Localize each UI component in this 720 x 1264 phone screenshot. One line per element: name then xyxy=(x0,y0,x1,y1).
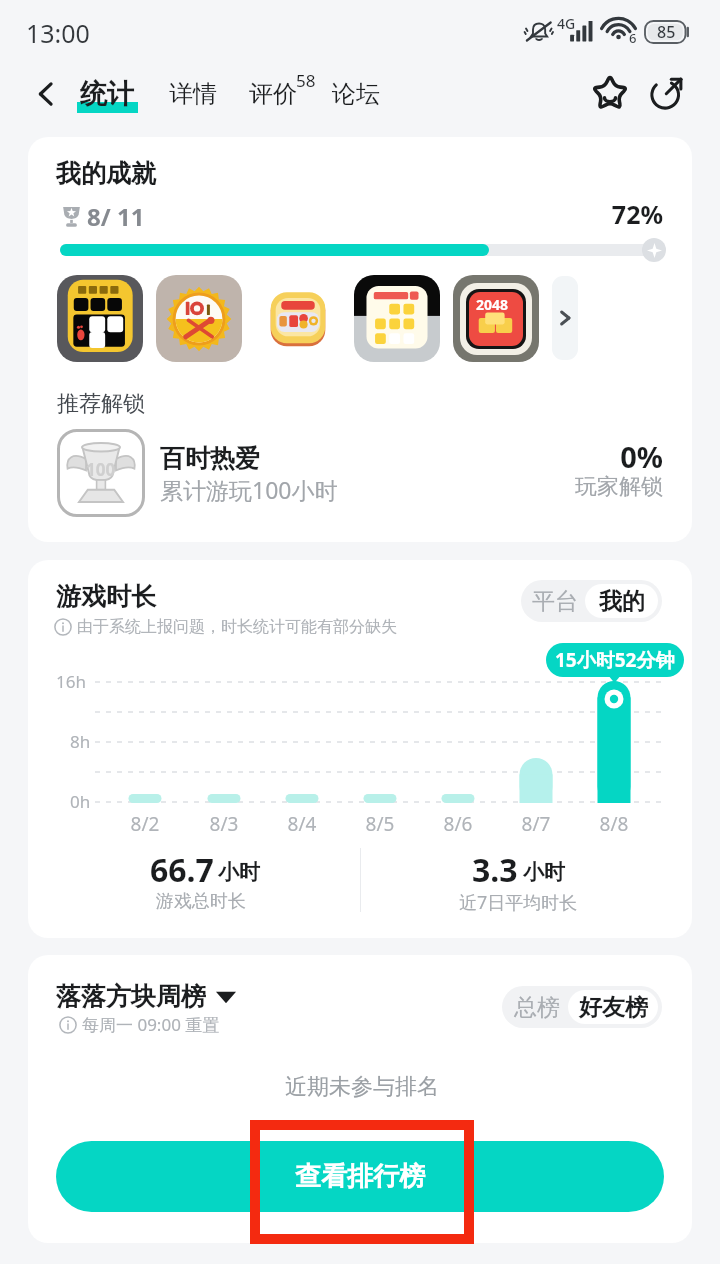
staticText: 论坛 xyxy=(332,79,380,109)
staticText: 游戏时长 xyxy=(56,581,156,612)
button[interactable]: 平台 xyxy=(525,584,585,618)
staticText: 详情 xyxy=(169,79,217,109)
button[interactable]: 好友榜 xyxy=(568,990,658,1024)
button[interactable]: Back xyxy=(22,70,70,118)
staticText: 15小时52分钟 xyxy=(555,647,675,673)
staticText: 8/ 11 xyxy=(87,200,145,233)
staticText: 统计 xyxy=(80,77,134,111)
staticText: 8/6 xyxy=(428,811,488,837)
staticText: 百时热爱 xyxy=(160,443,260,474)
staticText: 由于系统上报问题，时长统计可能有部分缺失 xyxy=(77,617,397,637)
staticText: 小时 xyxy=(523,859,565,885)
button[interactable]: Achievement 4 xyxy=(354,275,440,362)
staticText: 6 xyxy=(629,29,637,47)
staticText: 每周一 09:00 重置 xyxy=(82,1013,220,1036)
staticText: 8/8 xyxy=(584,811,644,837)
button[interactable]: Achievement 1 xyxy=(57,275,143,362)
staticText: 4G xyxy=(557,14,576,33)
staticText: 8/5 xyxy=(350,811,410,837)
staticText: 8/4 xyxy=(272,811,332,837)
staticText: 玩家解锁 xyxy=(543,473,663,501)
staticText: 85 xyxy=(657,21,676,43)
staticText: 0% xyxy=(543,437,663,476)
button[interactable]: 详情 xyxy=(167,79,219,109)
button[interactable]: 评价 xyxy=(249,79,297,109)
staticText: 58 xyxy=(296,69,316,92)
staticText: 8/2 xyxy=(115,811,175,837)
staticText: 近7日平均时长 xyxy=(459,890,578,915)
button[interactable]: 查看排行榜 xyxy=(56,1141,664,1212)
button[interactable]: More achievements xyxy=(552,276,578,360)
staticText: 8h xyxy=(70,730,91,753)
staticText: 2048 xyxy=(476,295,509,314)
button[interactable]: 统计 xyxy=(72,72,144,120)
staticText: 我的 xyxy=(599,587,645,616)
staticText: 72% xyxy=(563,197,663,231)
button[interactable]: 论坛 xyxy=(330,79,382,109)
staticText: 3.3 xyxy=(472,848,518,892)
staticText: 66.7 xyxy=(150,848,214,892)
button[interactable]: Share xyxy=(643,69,691,117)
staticText: 总榜 xyxy=(514,993,560,1022)
staticText: 100 xyxy=(86,458,116,481)
staticText: 好友榜 xyxy=(579,993,648,1022)
button[interactable]: Favorite xyxy=(586,68,634,116)
button[interactable]: Achievement 2 xyxy=(156,275,242,362)
staticText: 0h xyxy=(70,790,91,813)
staticText: 推荐解锁 xyxy=(57,390,145,418)
staticText: 8/7 xyxy=(506,811,566,837)
staticText: 我的成就 xyxy=(56,158,156,189)
staticText: 16h xyxy=(56,670,86,693)
button[interactable]: 总榜 xyxy=(506,990,568,1024)
button[interactable]: Achievement 3 xyxy=(255,275,341,362)
staticText: 评价 xyxy=(249,79,297,109)
staticText: 小时 xyxy=(218,859,260,885)
staticText: 13:00 xyxy=(26,16,90,50)
staticText: 8/3 xyxy=(194,811,254,837)
button[interactable]: 我的 xyxy=(585,584,658,618)
staticText: 累计游玩100小时 xyxy=(160,474,338,505)
staticText: 落落方块周榜 xyxy=(56,981,206,1012)
button[interactable]: Achievement 5 xyxy=(453,275,539,362)
staticText: 查看排行榜 xyxy=(295,1160,425,1193)
staticText: 游戏总时长 xyxy=(156,890,246,913)
staticText: 平台 xyxy=(532,587,578,616)
staticText: 近期未参与排名 xyxy=(285,1073,439,1101)
